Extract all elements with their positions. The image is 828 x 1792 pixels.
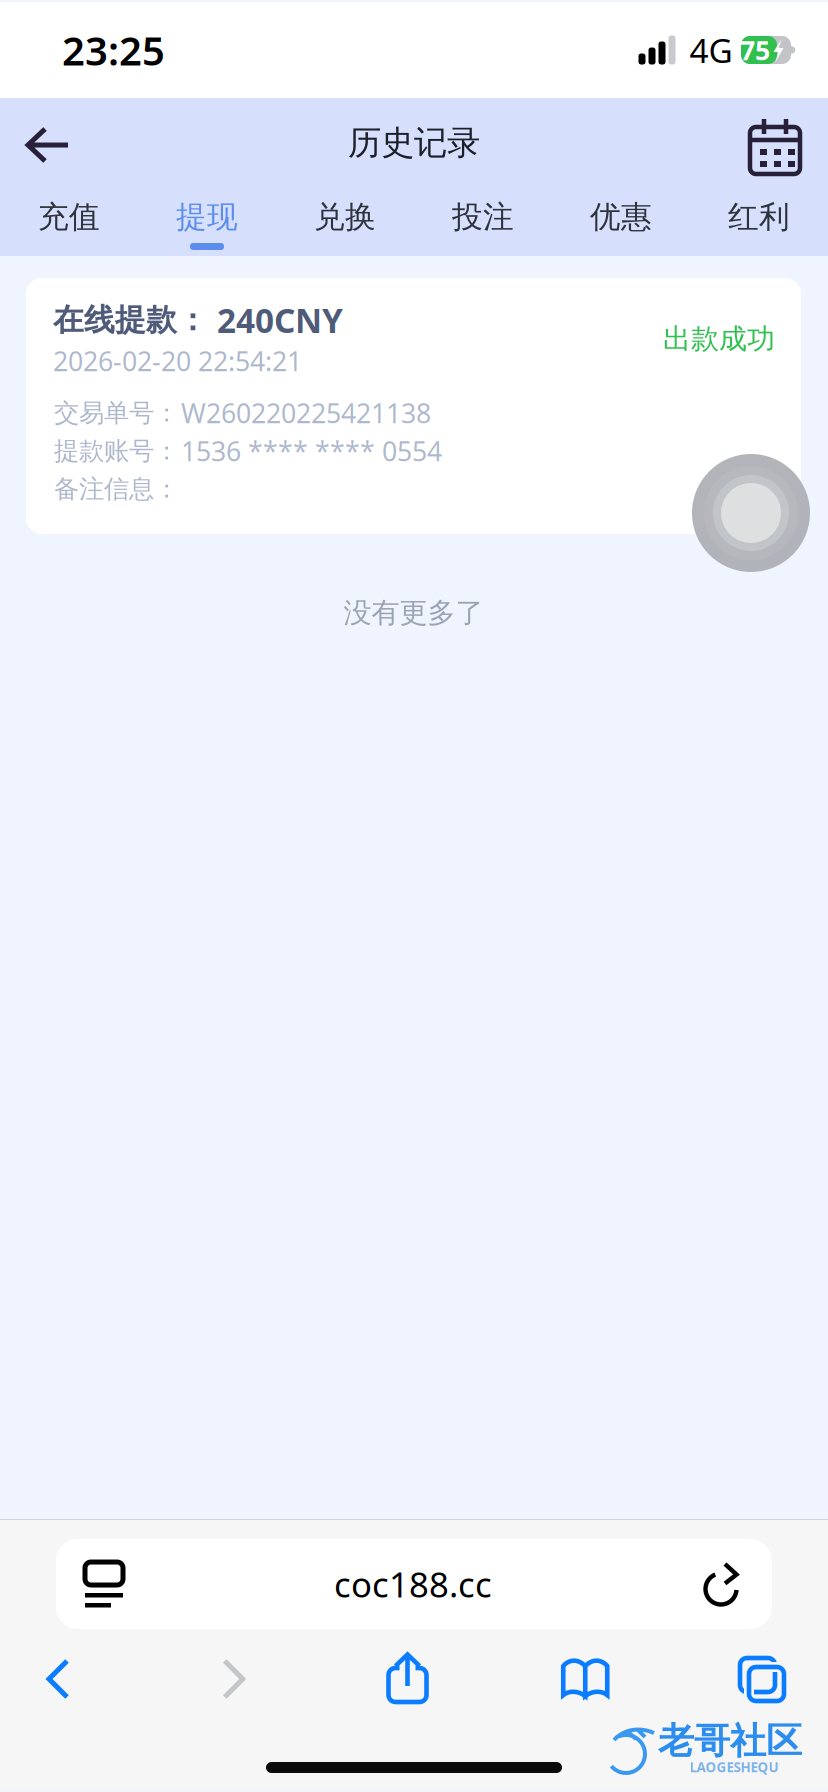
staticText: 2026-02-20 22:54:21 [53,343,302,379]
staticText: 1536 **** **** 0554 [181,433,442,469]
staticText: 出款成功 [663,322,775,356]
button[interactable]: Back [0,98,96,188]
staticText: LAOGESHEQU [689,1758,778,1776]
button[interactable]: 投注 [414,188,552,256]
staticText: 提款账号： [54,435,179,466]
staticText: 75 [740,32,770,68]
staticText: 备注信息： [54,473,179,504]
button[interactable]: Tabs [706,1649,816,1709]
staticText: coc188.cc [334,1561,492,1607]
button[interactable]: 优惠 [552,188,690,256]
staticText: 4G [689,28,732,72]
button[interactable]: 红利 [690,188,828,256]
button[interactable]: Calendar [724,98,828,188]
button[interactable]: Share [354,1649,464,1709]
staticText: 老哥社区 [658,1719,802,1763]
button[interactable]: Bookmarks [530,1649,640,1709]
staticText: 优惠 [590,198,652,236]
staticText: 没有更多了 [343,596,483,630]
staticText: 红利 [728,198,790,236]
button[interactable]: Forward [179,1649,289,1709]
staticText: W260220225421138 [181,395,431,431]
button[interactable]: Back [3,1649,113,1709]
staticText: 兑换 [314,198,376,236]
button[interactable]: 提现 [138,188,276,256]
button[interactable]: 兑换 [276,188,414,256]
staticText: 历史记录 [348,122,480,163]
button[interactable]: coc188.cc [56,1539,772,1629]
staticText: 交易单号： [54,397,179,428]
staticText: 在线提款： [53,301,208,339]
staticText: 240CNY [217,298,343,342]
staticText: 投注 [452,198,514,236]
button[interactable]: 充值 [0,188,138,256]
staticText: 提现 [176,198,238,236]
staticText: 充值 [38,198,100,236]
staticText: 23:25 [62,23,165,76]
